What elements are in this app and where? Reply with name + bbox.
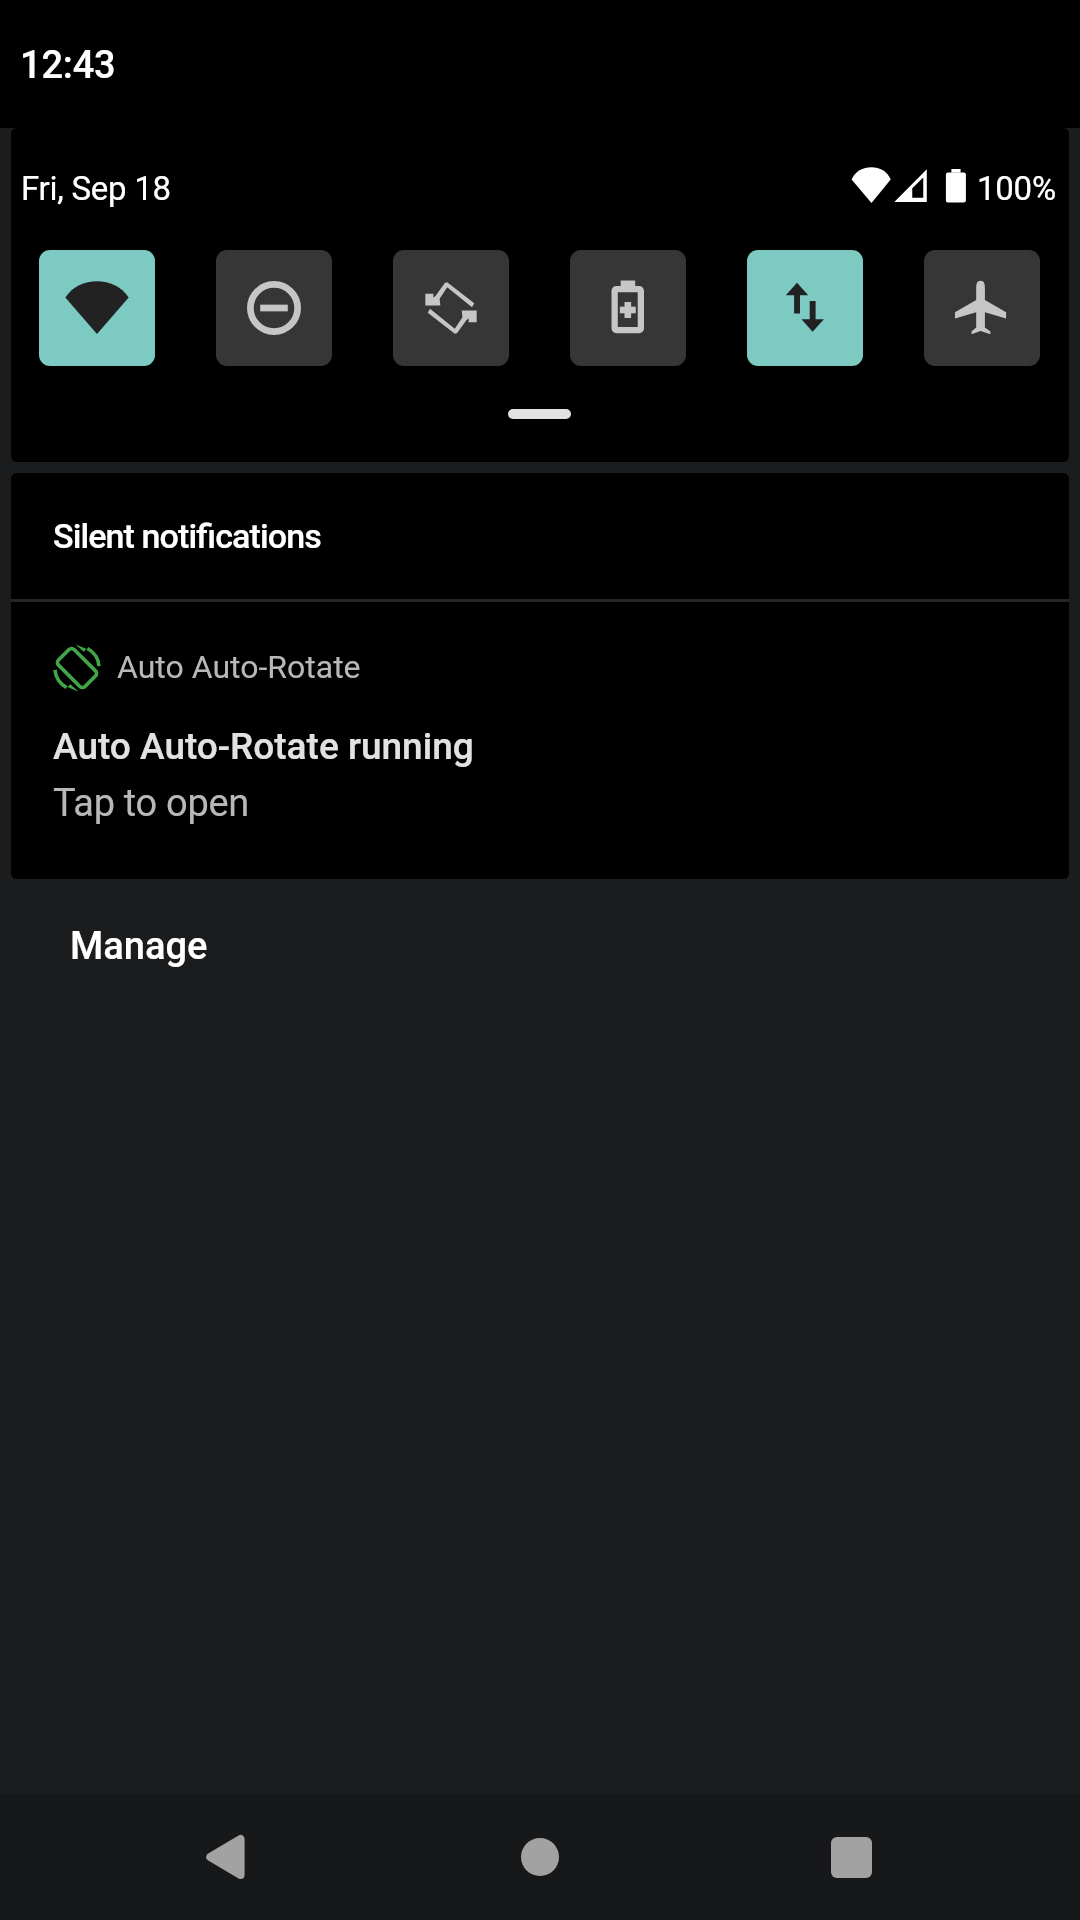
button[interactable]: Silent notifications [11, 473, 1069, 599]
staticText: Auto Auto-Rotate [117, 648, 361, 686]
staticText: 100% [977, 169, 1056, 208]
staticText: Tap to open [53, 781, 250, 826]
button[interactable]: Recent apps [773, 1794, 929, 1920]
staticText: Manage [70, 924, 208, 969]
button[interactable]: Auto rotate [393, 250, 509, 366]
button[interactable]: Battery saver [570, 250, 686, 366]
staticText: Auto Auto-Rotate running [53, 725, 474, 768]
button[interactable]: Home [462, 1794, 618, 1920]
button[interactable]: Back [145, 1794, 301, 1920]
staticText: 12:43 [20, 43, 116, 88]
staticText: Silent notifications [53, 516, 321, 556]
button[interactable]: Do not disturb [216, 250, 332, 366]
button[interactable]: Mobile data [747, 250, 863, 366]
staticText: Fri, Sep 18 [21, 169, 171, 208]
button[interactable]: Auto Auto-Rotate [11, 601, 1069, 879]
button[interactable]: Airplane mode [924, 250, 1040, 366]
button[interactable]: Wi-Fi [39, 250, 155, 366]
button[interactable]: Manage [38, 903, 240, 989]
